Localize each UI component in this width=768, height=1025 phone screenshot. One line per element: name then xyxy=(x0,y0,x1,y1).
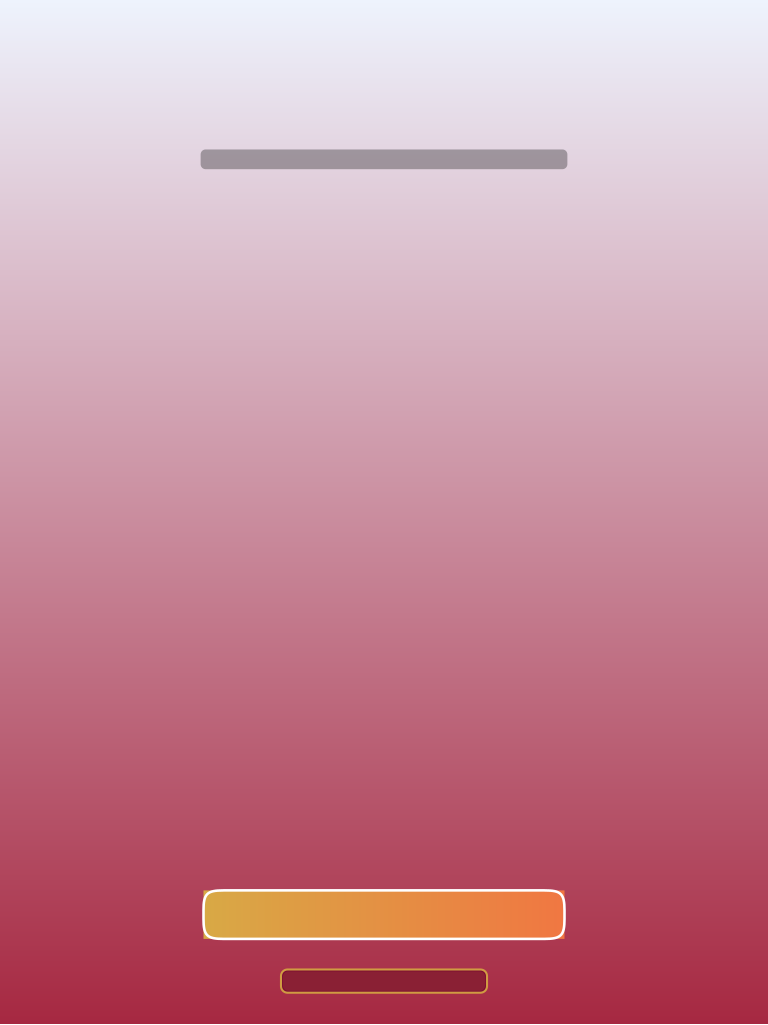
button[interactable]: Not now xyxy=(281,969,487,993)
button[interactable]: Continue xyxy=(203,890,564,939)
